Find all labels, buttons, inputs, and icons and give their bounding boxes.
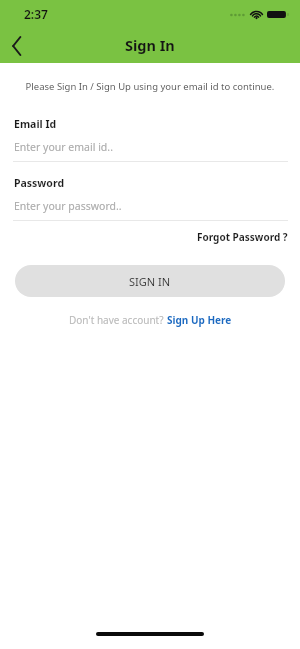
staticText: Enter your email id.. xyxy=(14,140,113,154)
staticText: Enter your password.. xyxy=(14,199,122,213)
staticText: Password xyxy=(14,176,65,190)
button[interactable]: Sign Up Here xyxy=(167,313,232,327)
staticText: 2:37 xyxy=(24,6,48,22)
staticText: Sign Up Here xyxy=(167,313,232,327)
button[interactable]: Forgot Password ? xyxy=(197,228,288,246)
staticText: Email Id xyxy=(14,117,57,131)
button[interactable]: Enter your password.. xyxy=(0,199,300,221)
staticText: Don't have account? xyxy=(69,313,167,327)
button[interactable]: Back xyxy=(0,29,34,63)
staticText: Sign In xyxy=(125,35,175,55)
staticText: Please Sign In / Sign Up using your emai… xyxy=(16,80,284,93)
button[interactable]: SIGN IN xyxy=(15,265,285,297)
staticText: SIGN IN xyxy=(129,274,171,289)
button[interactable]: Enter your email id.. xyxy=(0,140,300,162)
staticText: Forgot Password ? xyxy=(197,230,288,244)
